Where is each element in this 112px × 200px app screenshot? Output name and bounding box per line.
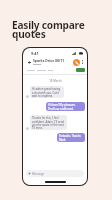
staticText: quotes: [12, 27, 46, 41]
other: Add attachment: [28, 172, 31, 175]
button[interactable]: Thanks for this, I feel confident. Adam,…: [30, 115, 67, 130]
button[interactable]: Call: [73, 59, 80, 66]
staticText: Thanks for this, I feel confident. Adam,…: [32, 116, 65, 129]
staticText: Sparks Drive 08/11: [33, 58, 65, 63]
staticText: 18 March: [26, 79, 85, 83]
button[interactable]: Hi admin great having a chat with you. C…: [30, 86, 64, 98]
button[interactable]: Hi there! My pleasure. That's us confirm…: [46, 102, 85, 111]
staticText: Hi admin great having a chat with you. C…: [32, 87, 62, 97]
button[interactable]: [76, 68, 85, 72]
button[interactable]: Fantastic. Thanks Mark: [57, 133, 85, 142]
staticText: Hi there! My pleasure. That's us confirm…: [48, 103, 83, 110]
staticText: Message: [32, 172, 45, 176]
staticText: Easily compare: [12, 18, 85, 32]
staticText: 9:41: [31, 51, 39, 56]
button[interactable]: Add attachment: [26, 170, 84, 177]
button[interactable]: More options: [81, 59, 84, 65]
button[interactable]: Back: [27, 60, 32, 65]
staticText: Fantastic. Thanks Mark: [59, 134, 83, 141]
